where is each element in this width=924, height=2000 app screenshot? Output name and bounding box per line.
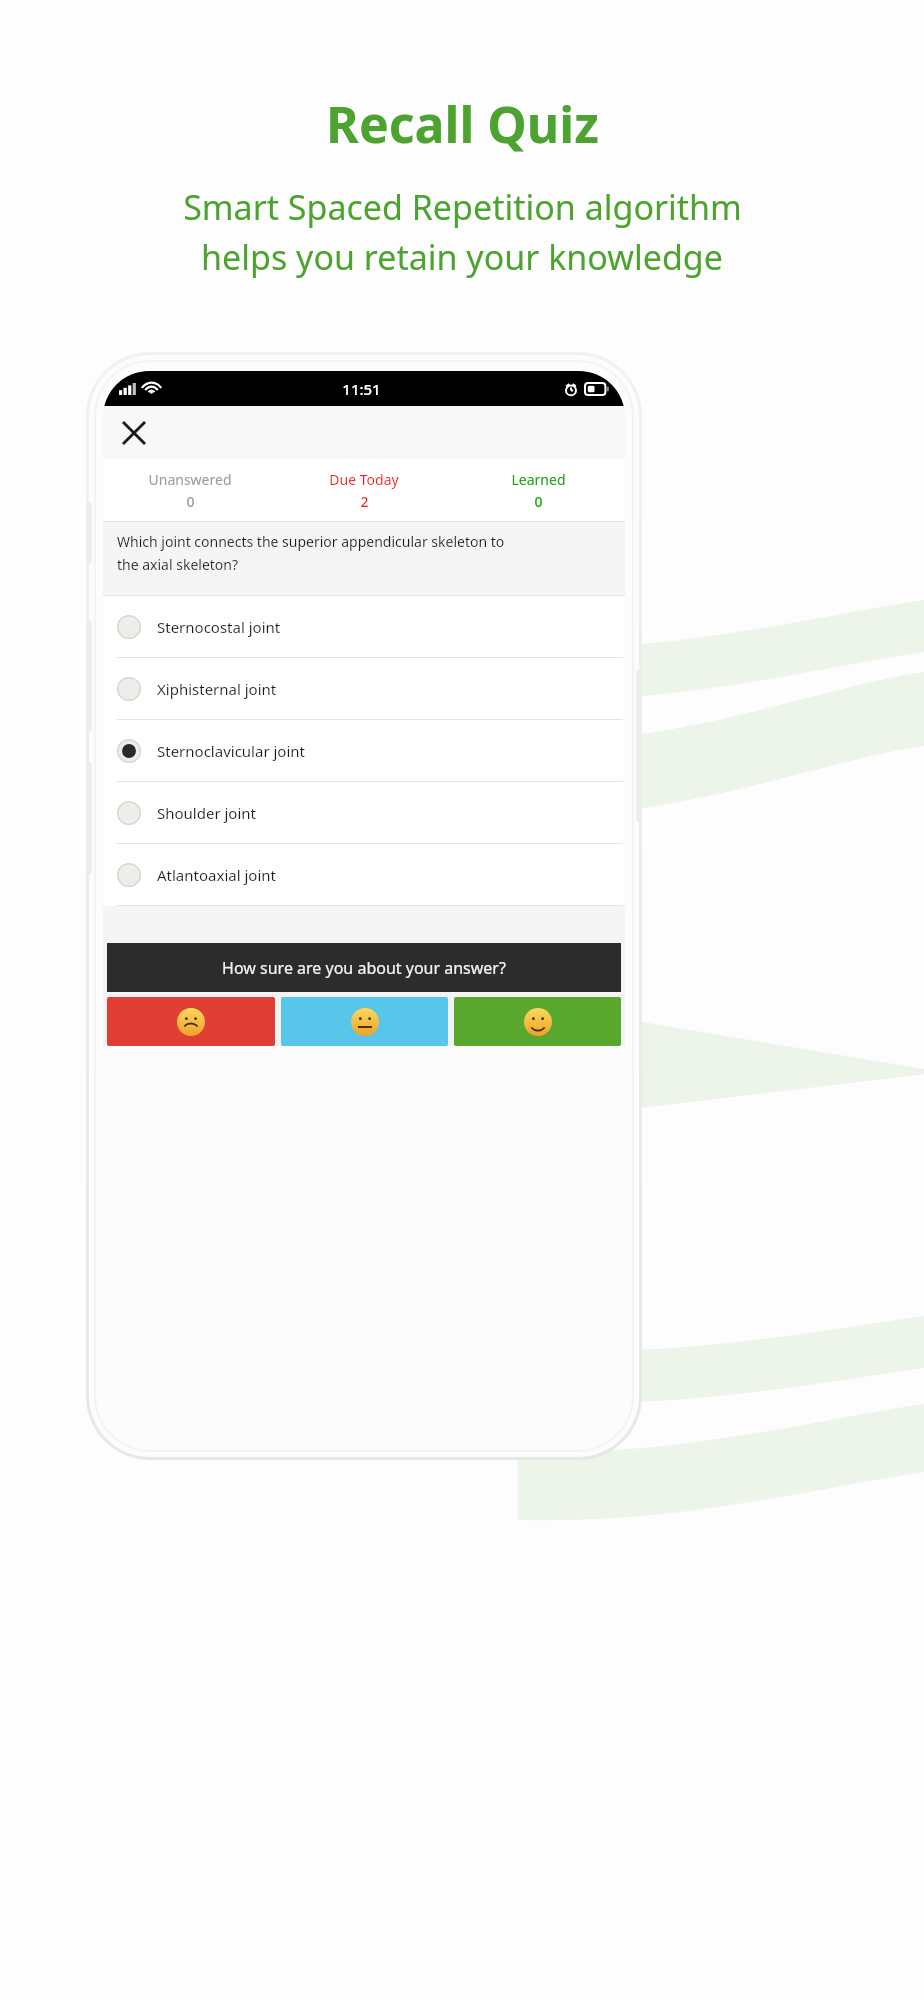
button[interactable]: Due Today bbox=[277, 459, 451, 522]
staticText: 2 bbox=[360, 492, 369, 511]
staticText: Shoulder joint bbox=[157, 803, 257, 823]
button[interactable]: How sure are you about your answer? bbox=[107, 943, 621, 992]
button[interactable]: Unanswered bbox=[103, 459, 277, 522]
button[interactable]: Very sure bbox=[454, 997, 621, 1046]
button[interactable]: Learned bbox=[451, 459, 625, 522]
button[interactable]: Atlantoaxial joint bbox=[103, 844, 625, 905]
staticText: Atlantoaxial joint bbox=[157, 865, 276, 885]
staticText: Recall Quiz bbox=[326, 90, 599, 158]
staticText: Sternocostal joint bbox=[157, 617, 281, 637]
staticText: Unanswered bbox=[148, 470, 232, 489]
staticText: Due Today bbox=[329, 470, 399, 489]
button[interactable]: Xiphisternal joint bbox=[103, 658, 625, 719]
button[interactable]: Sternocostal joint bbox=[103, 596, 625, 657]
button[interactable]: Sternoclavicular joint bbox=[103, 720, 625, 781]
staticText: the axial skeleton? bbox=[117, 555, 239, 574]
staticText: Smart Spaced Repetition algorithm bbox=[183, 184, 742, 230]
button[interactable]: Close bbox=[111, 410, 157, 456]
staticText: How sure are you about your answer? bbox=[222, 957, 506, 979]
staticText: 0 bbox=[534, 492, 543, 511]
button[interactable]: Somewhat sure bbox=[281, 997, 448, 1046]
staticText: Learned bbox=[511, 470, 566, 489]
staticText: Which joint connects the superior append… bbox=[117, 532, 505, 551]
staticText: 0 bbox=[186, 492, 195, 511]
staticText: helps you retain your knowledge bbox=[201, 234, 723, 280]
staticText: Xiphisternal joint bbox=[157, 679, 277, 699]
button[interactable]: Not sure bbox=[107, 997, 275, 1046]
staticText: Sternoclavicular joint bbox=[157, 741, 305, 761]
staticText: 11:51 bbox=[342, 379, 381, 399]
button[interactable]: Shoulder joint bbox=[103, 782, 625, 843]
